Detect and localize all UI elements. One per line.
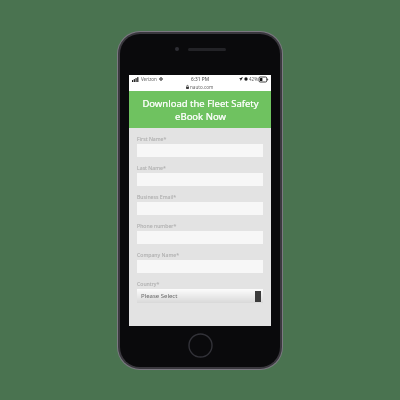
button[interactable]: nauto.com [129, 83, 271, 91]
staticText: 42% [249, 76, 258, 82]
staticText: Country* [137, 280, 160, 287]
staticText: nauto.com [190, 84, 214, 90]
staticText: Please Select [141, 292, 178, 300]
button[interactable]: Please Select [137, 289, 263, 303]
staticText: Download the Fleet Safety eBook Now [142, 97, 259, 123]
staticText: Company Name* [137, 251, 180, 258]
button[interactable]: Home [188, 333, 213, 358]
button[interactable]: Download the Fleet Safety eBook Now [129, 91, 271, 128]
staticText: Verizon [141, 76, 157, 82]
staticText: Phone number* [137, 222, 177, 229]
staticText: Business Email* [137, 193, 177, 200]
staticText: Last Name* [137, 164, 166, 171]
staticText: 6:31 PM [191, 76, 210, 83]
staticText: First Name* [137, 135, 167, 142]
